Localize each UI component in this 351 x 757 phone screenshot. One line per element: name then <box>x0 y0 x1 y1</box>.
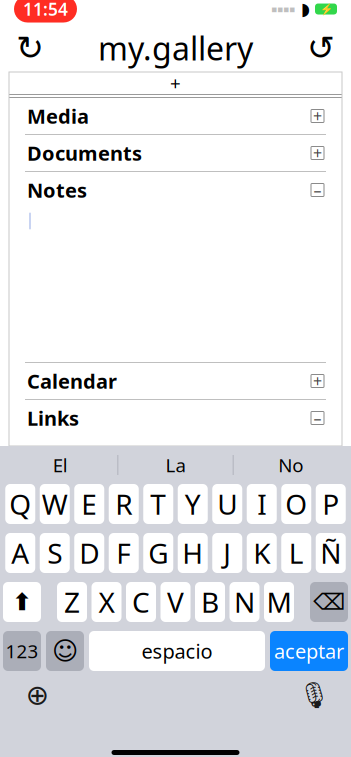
staticText: ↺ <box>307 29 335 67</box>
staticText: C <box>132 583 150 621</box>
staticText: + <box>170 71 181 95</box>
button[interactable]: T <box>143 484 173 524</box>
staticText: ☺ <box>52 637 78 665</box>
staticText: Q <box>9 485 31 523</box>
button[interactable]: V <box>160 582 190 622</box>
staticText: ⌫ <box>313 589 345 615</box>
staticText: – <box>313 179 321 201</box>
button[interactable]: Shift <box>3 582 41 622</box>
staticText: Media <box>27 103 89 129</box>
staticText: A <box>11 534 29 572</box>
button[interactable]: O <box>281 484 311 524</box>
button[interactable]: La <box>118 447 233 483</box>
button[interactable]: Documents <box>9 135 342 171</box>
button[interactable]: Calendar <box>9 363 342 399</box>
button[interactable]: U <box>212 484 242 524</box>
button[interactable]: F <box>109 533 139 573</box>
button[interactable]: Notes <box>9 172 342 208</box>
staticText: T <box>150 485 166 523</box>
staticText: E <box>81 485 97 523</box>
staticText: S <box>47 534 62 572</box>
staticText: ⊕ <box>25 679 48 711</box>
button[interactable]: Switch keyboard <box>15 675 59 715</box>
staticText: K <box>253 534 270 572</box>
staticText: Z <box>64 583 80 621</box>
button[interactable]: Delete <box>310 582 348 622</box>
button[interactable]: Undo <box>299 28 343 68</box>
staticText: M <box>266 583 291 621</box>
button[interactable]: N <box>229 582 259 622</box>
button[interactable]: espacio <box>89 631 265 671</box>
button[interactable]: X <box>91 582 121 622</box>
button[interactable]: I <box>247 484 277 524</box>
button[interactable]: Emoji <box>46 631 84 671</box>
staticText: N <box>234 583 255 621</box>
button[interactable]: A <box>5 533 35 573</box>
staticText: Documents <box>27 140 142 166</box>
button[interactable]: R <box>109 484 139 524</box>
staticText: + <box>313 142 322 164</box>
staticText: El <box>53 453 68 477</box>
button[interactable]: No <box>234 447 348 483</box>
button[interactable]: H <box>178 533 208 573</box>
button[interactable]: Links <box>9 400 342 436</box>
staticText: + <box>313 105 322 127</box>
button[interactable]: Q <box>5 484 35 524</box>
staticText: L <box>289 534 304 572</box>
button[interactable]: Add section <box>9 72 342 94</box>
staticText: ▪▪▪▪ <box>271 4 295 14</box>
staticText: No <box>278 453 303 477</box>
button[interactable]: P <box>316 484 346 524</box>
staticText: ◗ <box>301 0 310 19</box>
button[interactable]: Y <box>178 484 208 524</box>
staticText: O <box>285 485 307 523</box>
staticText: W <box>42 485 68 523</box>
staticText: 123 <box>5 639 38 663</box>
staticText: H <box>182 534 203 572</box>
button[interactable]: D <box>74 533 104 573</box>
button[interactable]: W <box>40 484 70 524</box>
staticText: F <box>116 534 131 572</box>
button[interactable]: K <box>247 533 277 573</box>
button[interactable]: Numbers <box>3 631 41 671</box>
staticText: Links <box>27 405 79 431</box>
staticText: Ñ <box>320 534 341 572</box>
button[interactable]: B <box>195 582 225 622</box>
staticText: U <box>217 485 237 523</box>
staticText: aceptar <box>274 638 344 664</box>
staticText: 11:54 <box>23 0 68 20</box>
staticText: ↻ <box>16 29 44 67</box>
staticText: ⬆ <box>12 588 32 616</box>
staticText: – <box>313 407 321 429</box>
button[interactable]: El <box>3 447 117 483</box>
button[interactable]: Z <box>57 582 87 622</box>
staticText: + <box>313 370 322 392</box>
button[interactable]: Redo <box>8 28 52 68</box>
staticText: V <box>167 583 184 621</box>
staticText: P <box>322 485 339 523</box>
staticText: my.gallery <box>98 27 253 69</box>
staticText: Notes <box>27 177 87 203</box>
staticText: R <box>115 485 132 523</box>
staticText: Y <box>185 485 201 523</box>
button[interactable]: C <box>126 582 156 622</box>
staticText: espacio <box>141 638 212 664</box>
button[interactable]: S <box>40 533 70 573</box>
button[interactable]: G <box>143 533 173 573</box>
button[interactable]: L <box>281 533 311 573</box>
staticText: Calendar <box>27 368 117 394</box>
button[interactable]: Ñ <box>316 533 346 573</box>
staticText: I <box>257 485 266 523</box>
staticText: La <box>165 453 185 477</box>
button[interactable]: M <box>264 582 294 622</box>
staticText: X <box>98 583 114 621</box>
staticText: G <box>148 534 168 572</box>
staticText: D <box>79 534 99 572</box>
button[interactable]: J <box>212 533 242 573</box>
button[interactable]: E <box>74 484 104 524</box>
button[interactable]: Media <box>9 98 342 134</box>
staticText: J <box>223 534 231 572</box>
staticText: B <box>201 583 219 621</box>
button[interactable]: aceptar <box>270 631 348 671</box>
button[interactable]: Dictation <box>292 675 336 715</box>
